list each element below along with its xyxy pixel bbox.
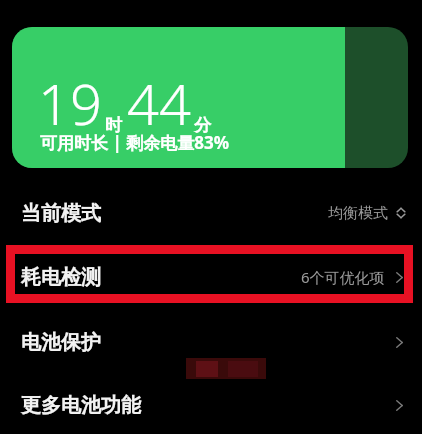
staticText: 分: [194, 115, 211, 136]
staticText: 时: [105, 115, 122, 136]
button[interactable]: 更多电池功能: [0, 380, 422, 430]
staticText: 耗电检测: [21, 265, 101, 290]
staticText: 可用时长 | 剩余电量83%: [40, 131, 229, 154]
staticText: 19: [38, 65, 102, 141]
staticText: 均衡模式: [328, 204, 388, 223]
staticText: 电池保护: [21, 330, 101, 355]
staticText: 当前模式: [21, 201, 101, 226]
staticText: 44: [127, 65, 191, 141]
staticText: 6个可优化项: [301, 267, 385, 287]
staticText: 更多电池功能: [21, 393, 141, 418]
button[interactable]: 当前模式: [0, 188, 422, 238]
button[interactable]: 电池保护: [0, 317, 422, 367]
button[interactable]: 耗电检测: [0, 252, 422, 302]
button[interactable]: 19: [12, 27, 408, 168]
